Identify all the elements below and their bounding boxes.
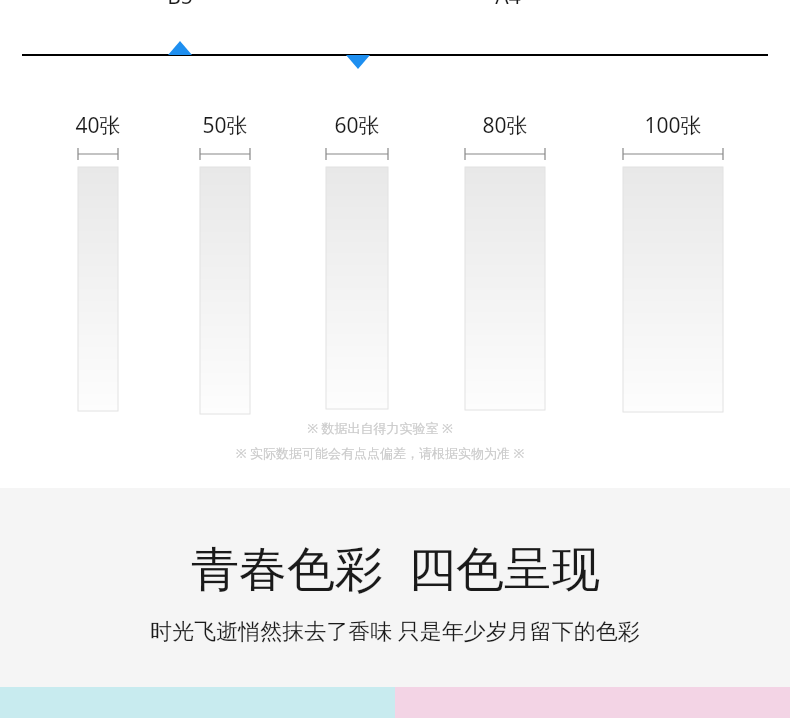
button[interactable]: 100张 (613, 111, 733, 140)
staticText: 时光飞逝悄然抹去了香味 只是年少岁月留下的色彩 (150, 615, 640, 645)
staticText: 青春色彩 四色呈现 (191, 535, 600, 601)
staticText: 50张 (165, 111, 285, 140)
button[interactable]: 60张 (297, 111, 417, 140)
staticText: A4 (463, 0, 553, 11)
staticText: ※ 实际数据可能会有点点偏差，请根据实物为准 ※ (0, 444, 775, 462)
staticText: 60张 (297, 111, 417, 140)
button[interactable]: 80张 (445, 111, 565, 140)
staticText: 40张 (38, 111, 158, 140)
button[interactable]: 50张 (165, 111, 285, 140)
button[interactable]: 40张 (38, 111, 158, 140)
staticText: 80张 (445, 111, 565, 140)
staticText: 100张 (613, 111, 733, 140)
staticText: B5 (135, 0, 225, 11)
staticText: ※ 数据出自得力实验室 ※ (0, 419, 775, 437)
